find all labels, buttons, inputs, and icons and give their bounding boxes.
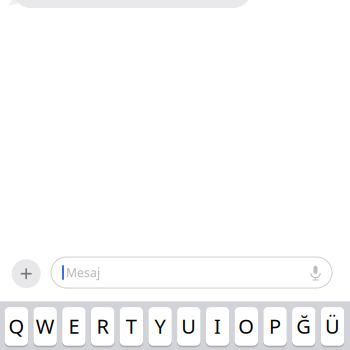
button[interactable]: I: [206, 307, 229, 346]
button[interactable]: Q: [5, 307, 28, 346]
staticText: Ğ: [296, 313, 311, 339]
staticText: Y: [155, 313, 166, 339]
staticText: E: [68, 313, 79, 339]
button[interactable]: E: [62, 307, 86, 346]
staticText: Q: [8, 313, 24, 339]
button[interactable]: Message field: [51, 257, 332, 288]
staticText: T: [126, 313, 137, 339]
button[interactable]: P: [263, 307, 287, 346]
staticText: U: [181, 313, 196, 339]
button[interactable]: Ü: [321, 307, 344, 346]
staticText: Mesaj: [66, 264, 100, 280]
button[interactable]: Record audio message: [304, 262, 326, 284]
button[interactable]: T: [120, 307, 143, 346]
button[interactable]: O: [235, 307, 258, 346]
button[interactable]: Add attachment: [12, 259, 41, 288]
staticText: P: [269, 313, 281, 339]
button[interactable]: Ğ: [292, 307, 315, 346]
staticText: R: [97, 313, 109, 339]
staticText: W: [36, 313, 55, 339]
button[interactable]: U: [177, 307, 200, 346]
button[interactable]: R: [91, 307, 114, 346]
button[interactable]: Y: [148, 307, 172, 346]
staticText: Ü: [325, 313, 340, 339]
staticText: O: [238, 313, 254, 339]
staticText: I: [214, 313, 221, 339]
button[interactable]: W: [33, 307, 57, 346]
